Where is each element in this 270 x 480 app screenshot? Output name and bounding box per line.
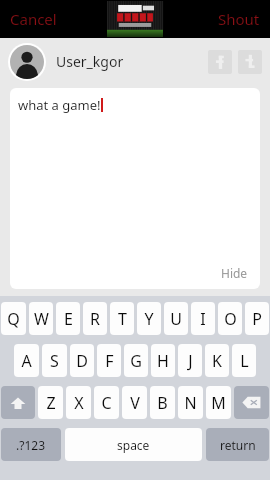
button[interactable]: V	[122, 386, 147, 419]
staticText: I	[200, 308, 206, 330]
button[interactable]: space	[65, 428, 202, 461]
staticText: P	[252, 308, 262, 330]
staticText: M	[211, 392, 226, 414]
staticText: D	[76, 350, 88, 372]
button[interactable]: K	[205, 344, 229, 377]
staticText: N	[184, 392, 197, 414]
staticText: B	[157, 392, 168, 414]
staticText: Q	[7, 308, 20, 330]
staticText: O	[224, 308, 237, 330]
button[interactable]: Hide	[218, 262, 251, 284]
button[interactable]: Shout	[214, 4, 264, 34]
button[interactable]: ESPN 104.5 FM Baton Rouge	[107, 1, 163, 37]
button[interactable]: P	[245, 302, 269, 335]
staticText: E	[64, 308, 73, 330]
button[interactable]: B	[150, 386, 175, 419]
button[interactable]: M	[206, 386, 231, 419]
button[interactable]: A	[14, 344, 39, 377]
staticText: V	[130, 392, 140, 414]
staticText: J	[188, 350, 193, 372]
button[interactable]: H	[151, 344, 175, 377]
staticText: .?123	[16, 437, 46, 453]
staticText: G	[130, 350, 142, 372]
button[interactable]: what a game!	[10, 88, 260, 289]
button[interactable]: Backspace	[234, 386, 269, 419]
staticText: space	[117, 437, 150, 453]
staticText: F	[105, 350, 114, 372]
button[interactable]: R	[83, 302, 107, 335]
button[interactable]: X	[66, 386, 91, 419]
button[interactable]: O	[218, 302, 242, 335]
staticText: Y	[144, 308, 154, 330]
staticText: T	[118, 308, 127, 330]
button[interactable]: return	[206, 428, 269, 461]
button[interactable]: Q	[1, 302, 26, 335]
staticText: Hide	[221, 265, 248, 281]
staticText: what a game!	[18, 96, 101, 114]
button[interactable]: F	[97, 344, 121, 377]
button[interactable]: W	[29, 302, 53, 335]
button[interactable]: L	[232, 344, 256, 377]
button[interactable]: Share on Twitter	[238, 50, 262, 74]
staticText: W	[34, 308, 49, 330]
button[interactable]: J	[178, 344, 202, 377]
staticText: L	[240, 350, 249, 372]
staticText: K	[212, 350, 222, 372]
button[interactable]: I	[191, 302, 215, 335]
button[interactable]: .?123	[1, 428, 61, 461]
button[interactable]: S	[42, 344, 67, 377]
staticText: U	[170, 308, 182, 330]
button[interactable]: D	[70, 344, 94, 377]
button[interactable]: Shift	[1, 386, 35, 419]
button[interactable]: C	[94, 386, 119, 419]
button[interactable]: Z	[38, 386, 63, 419]
button[interactable]: T	[110, 302, 134, 335]
button[interactable]: Cancel	[6, 4, 61, 34]
staticText: Cancel	[10, 9, 57, 29]
button[interactable]: U	[164, 302, 188, 335]
staticText: A	[21, 350, 32, 372]
staticText: User_kgor	[56, 52, 124, 71]
button[interactable]: G	[124, 344, 148, 377]
staticText: X	[74, 392, 84, 414]
button[interactable]: Share on Facebook	[208, 50, 232, 74]
staticText: R	[90, 308, 100, 330]
staticText: S	[50, 350, 59, 372]
button[interactable]: Y	[137, 302, 161, 335]
button[interactable]: Profile photo	[8, 43, 46, 81]
button[interactable]: N	[178, 386, 203, 419]
staticText: return	[220, 437, 256, 453]
staticText: Z	[46, 392, 56, 414]
staticText: H	[157, 350, 169, 372]
button[interactable]: E	[56, 302, 80, 335]
staticText: Shout	[218, 9, 260, 29]
staticText: C	[101, 392, 112, 414]
